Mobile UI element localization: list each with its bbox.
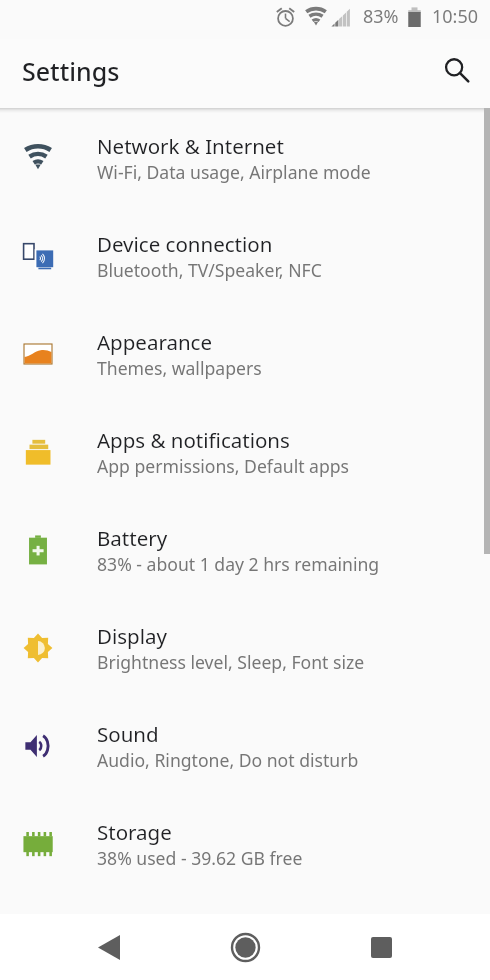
staticText: Audio, Ringtone, Do not disturb (97, 748, 359, 772)
staticText: Bluetooth, TV/Speaker, NFC (97, 258, 322, 282)
staticText: Battery (97, 524, 168, 552)
staticText: Settings (22, 54, 120, 88)
staticText: 38% used - 39.62 GB free (97, 846, 303, 870)
staticText: Display (97, 622, 167, 650)
button[interactable]: Search (433, 47, 481, 95)
staticText: Apps & notifications (97, 426, 290, 454)
button[interactable]: Apps & notifications (0, 403, 490, 501)
staticText: Storage (97, 818, 172, 846)
staticText: 83% (363, 4, 399, 29)
staticText: Network & Internet (97, 132, 284, 160)
button[interactable]: Display (0, 599, 490, 697)
staticText: Sound (97, 720, 159, 748)
button[interactable]: Battery (0, 501, 490, 599)
staticText: Wi-Fi, Data usage, Airplane mode (97, 160, 371, 184)
staticText: App permissions, Default apps (97, 454, 350, 478)
button[interactable]: Appearance (0, 305, 490, 403)
button[interactable]: Recent apps (353, 919, 409, 975)
button[interactable]: Device connection (0, 207, 490, 305)
staticText: 83% - about 1 day 2 hrs remaining (97, 552, 380, 576)
staticText: Brightness level, Sleep, Font size (97, 650, 365, 674)
button[interactable]: Home (217, 919, 273, 975)
staticText: Appearance (97, 328, 213, 356)
staticText: 10:50 (432, 4, 479, 29)
staticText: Themes, wallpapers (97, 356, 262, 380)
button[interactable]: Sound (0, 697, 490, 795)
button[interactable]: Back (81, 919, 137, 975)
button[interactable]: Network & Internet (0, 109, 490, 207)
staticText: Device connection (97, 230, 273, 258)
button[interactable]: Storage (0, 795, 490, 893)
